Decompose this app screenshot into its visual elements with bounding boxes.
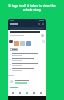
button[interactable]: Tab — [32, 91, 36, 95]
staticText: It logs in all it takes to view the — [8, 4, 56, 8]
button[interactable]: Tab — [18, 91, 22, 95]
button[interactable]: Tab — [25, 91, 29, 95]
staticText: whole story — [23, 8, 41, 12]
button[interactable]: Tab — [39, 91, 43, 95]
button[interactable]: Tab — [11, 91, 15, 95]
